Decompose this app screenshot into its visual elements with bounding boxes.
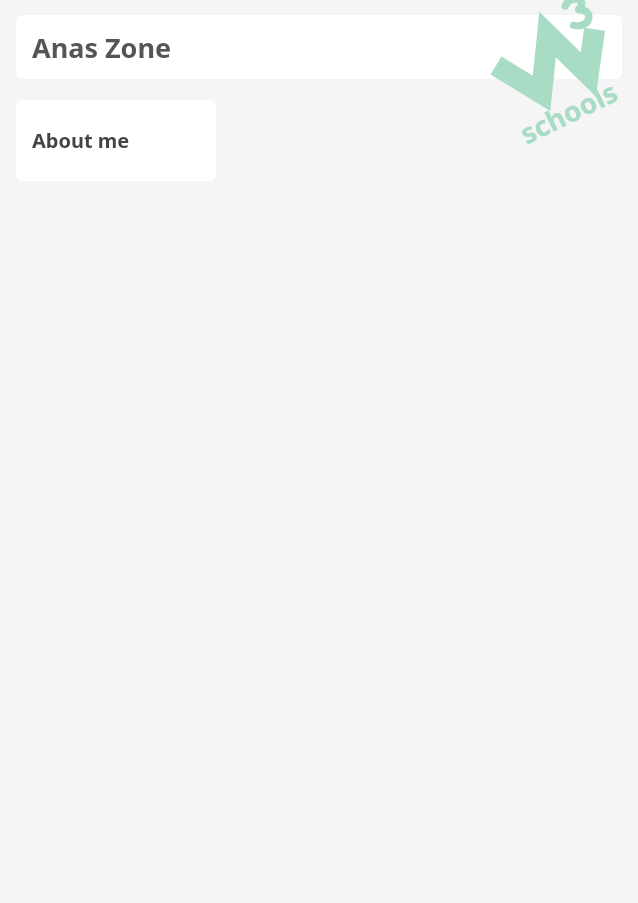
staticText: Anas Zone xyxy=(32,29,172,66)
staticText: schools xyxy=(513,70,629,152)
button[interactable]: About me xyxy=(16,100,216,181)
button[interactable]: Anas Zone xyxy=(16,15,622,79)
staticText: About me xyxy=(32,127,130,154)
